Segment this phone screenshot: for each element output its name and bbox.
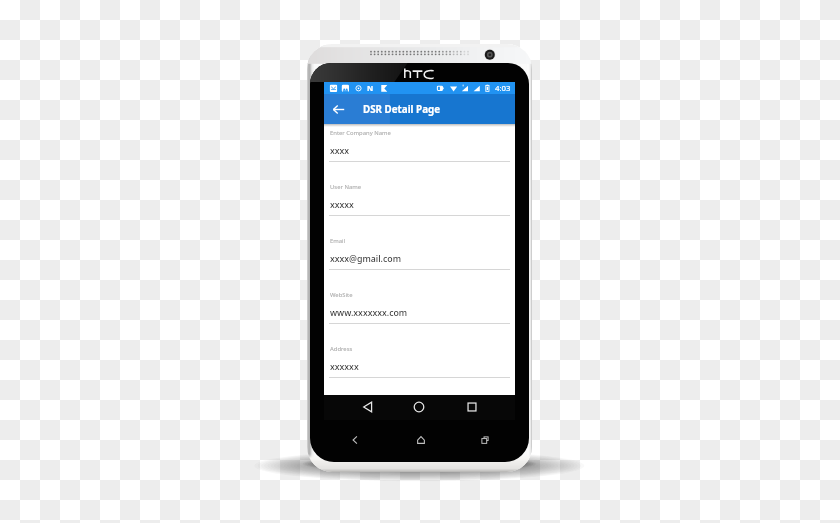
staticText: xxxx xyxy=(330,145,350,157)
button[interactable]: Back xyxy=(357,396,379,418)
button[interactable]: User Name xyxy=(324,181,515,235)
button[interactable]: Recent apps xyxy=(461,396,483,418)
staticText: xxxxxx xyxy=(330,361,359,373)
staticText: xxxx@gmail.com xyxy=(330,253,402,265)
staticText: 4:03 xyxy=(495,83,511,93)
button[interactable]: Back xyxy=(348,433,362,447)
button[interactable]: Recent apps xyxy=(478,433,492,447)
staticText: User Name xyxy=(330,183,362,191)
staticText: Enter Company Name xyxy=(330,129,391,137)
staticText: www.xxxxxxx.com xyxy=(330,307,408,319)
button[interactable]: WebSite xyxy=(324,289,515,343)
button[interactable]: Address xyxy=(324,343,515,395)
button[interactable]: Email xyxy=(324,235,515,289)
button[interactable]: Navigate up xyxy=(324,94,353,124)
staticText: Email xyxy=(330,237,346,245)
button[interactable]: Home xyxy=(414,433,428,447)
button[interactable]: Enter Company Name xyxy=(324,127,515,181)
staticText: DSR Detail Page xyxy=(363,103,441,116)
staticText: WebSite xyxy=(330,291,353,299)
staticText: Address xyxy=(330,345,353,353)
staticText: xxxxx xyxy=(330,199,354,211)
button[interactable]: Home xyxy=(408,396,430,418)
staticText: N xyxy=(367,83,374,93)
